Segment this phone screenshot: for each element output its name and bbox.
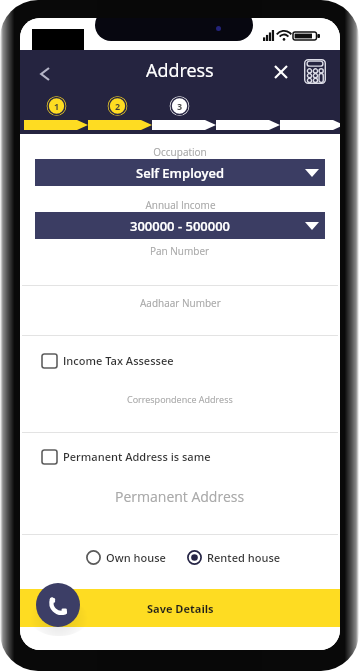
- staticText: Correspondence Address: [127, 393, 233, 405]
- staticText: 3: [177, 100, 183, 112]
- staticText: Rented house: [207, 550, 281, 565]
- button[interactable]: Calculator: [298, 54, 332, 88]
- staticText: 1: [54, 100, 60, 112]
- staticText: 300000 - 500000: [130, 217, 230, 235]
- button[interactable]: Permanent Address is same: [42, 446, 340, 467]
- button[interactable]: 300000 - 500000: [35, 212, 325, 239]
- staticText: Own house: [106, 550, 166, 565]
- staticText: Permanent Address is same: [63, 449, 211, 464]
- button[interactable]: Rented house: [187, 550, 281, 565]
- staticText: Permanent Address: [115, 487, 245, 506]
- staticText: Aadhaar Number: [140, 296, 221, 310]
- staticText: Save Details: [147, 601, 214, 616]
- button[interactable]: Correspondence Address: [20, 371, 340, 413]
- button[interactable]: Call: [36, 583, 80, 627]
- button[interactable]: Save Details: [20, 589, 340, 627]
- staticText: Pan Number: [150, 244, 210, 258]
- staticText: Income Tax Assessee: [63, 353, 174, 368]
- button[interactable]: Pan Number: [20, 239, 340, 285]
- button[interactable]: Back: [28, 57, 62, 91]
- staticText: Occupation: [153, 145, 207, 159]
- button[interactable]: Own house: [86, 550, 166, 565]
- staticText: 2: [115, 100, 121, 112]
- button[interactable]: Permanent Address: [20, 467, 340, 513]
- staticText: Self Employed: [136, 164, 225, 182]
- staticText: Annual Income: [145, 198, 216, 212]
- button[interactable]: Aadhaar Number: [20, 286, 340, 335]
- button[interactable]: Income Tax Assessee: [42, 350, 340, 371]
- staticText: Address: [146, 58, 214, 83]
- button[interactable]: Self Employed: [35, 159, 325, 186]
- button[interactable]: Close: [264, 55, 298, 89]
